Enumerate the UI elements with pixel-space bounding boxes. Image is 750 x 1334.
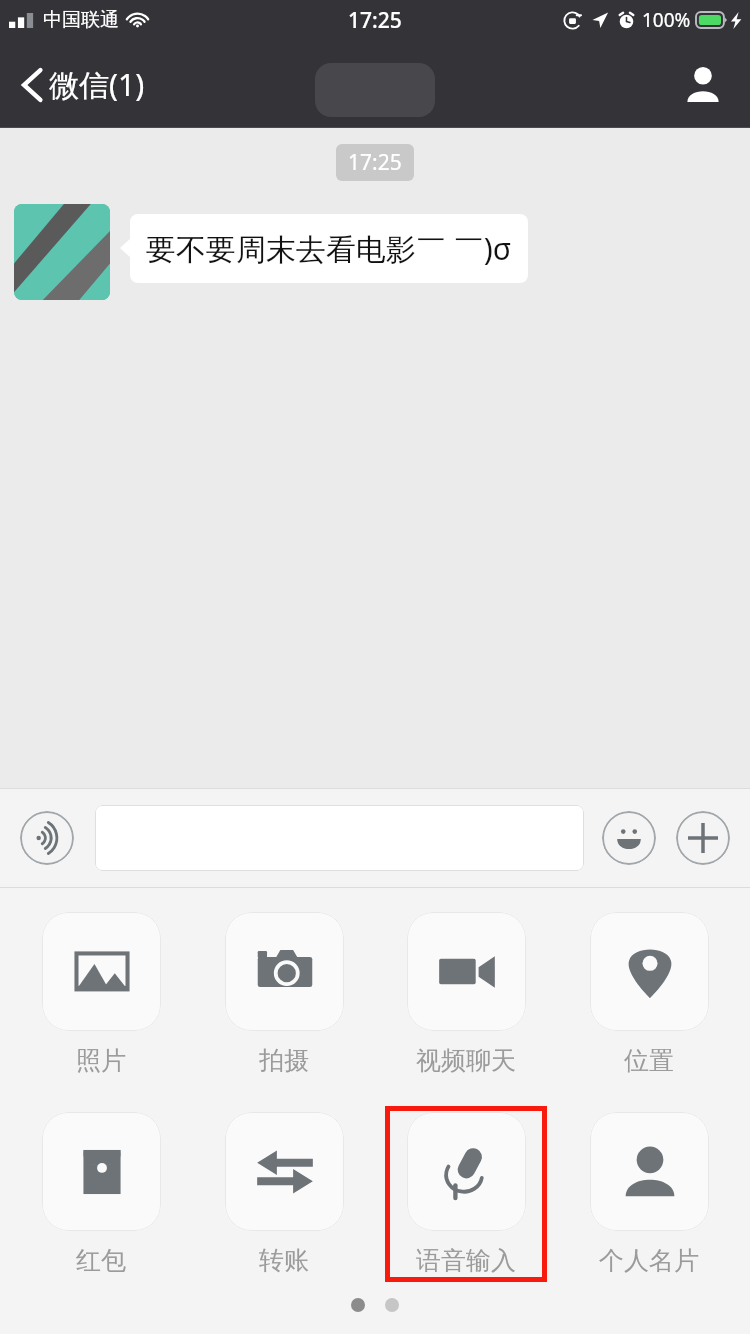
button[interactable]: 拍摄 <box>203 906 365 1082</box>
staticText: 视频聊天 <box>416 1045 516 1076</box>
staticText: 中国联通 <box>43 8 119 32</box>
staticText: 个人名片 <box>599 1245 699 1276</box>
button[interactable]: 照片 <box>20 906 182 1082</box>
staticText: 语音输入 <box>416 1245 516 1276</box>
button[interactable]: Message input <box>95 805 584 871</box>
button[interactable]: 个人名片 <box>568 1106 730 1282</box>
staticText: 微信(1) <box>49 64 145 105</box>
button[interactable]: 要不要周末去看电影￣ ￣)σ <box>130 214 528 283</box>
staticText: 100% <box>642 7 691 33</box>
staticText: 17:25 <box>348 148 402 177</box>
button[interactable]: 视频聊天 <box>385 906 547 1082</box>
staticText: 位置 <box>624 1045 674 1076</box>
staticText: 转账 <box>259 1245 309 1276</box>
button[interactable]: 位置 <box>568 906 730 1082</box>
staticText: 红包 <box>76 1245 126 1276</box>
button[interactable]: Contact profile <box>678 58 728 110</box>
button[interactable]: 红包 <box>20 1106 182 1282</box>
staticText: 拍摄 <box>259 1045 309 1076</box>
staticText: 要不要周末去看电影￣ ￣)σ <box>146 228 512 269</box>
button[interactable]: Voice message <box>20 811 74 865</box>
staticText: 17:25 <box>348 6 402 35</box>
button[interactable]: 转账 <box>203 1106 365 1282</box>
button[interactable]: More options <box>676 811 730 865</box>
button[interactable]: 语音输入 <box>385 1106 547 1282</box>
button[interactable]: Back to 微信 <box>14 56 153 113</box>
staticText: 照片 <box>76 1045 126 1076</box>
button[interactable]: Avatar <box>14 204 110 300</box>
button[interactable]: Emoji <box>602 811 656 865</box>
